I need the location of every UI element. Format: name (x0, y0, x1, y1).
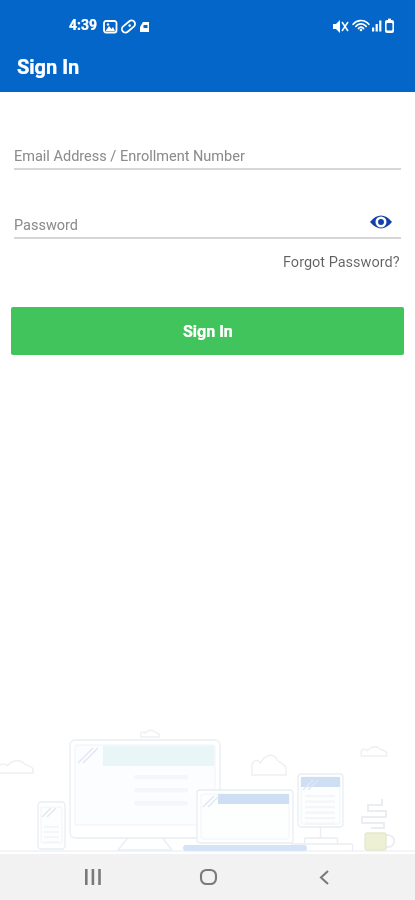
button[interactable]: Back (301, 854, 348, 900)
button[interactable]: Recents (69, 854, 116, 900)
staticText: Sign In (183, 322, 233, 341)
button[interactable]: Home (185, 854, 232, 900)
staticText: Email Address / Enrollment Number (14, 148, 245, 165)
button[interactable]: Show password (367, 208, 395, 236)
staticText: Password (14, 217, 79, 234)
button[interactable]: Forgot Password? (281, 250, 402, 275)
staticText: 4:39 (69, 17, 98, 33)
button[interactable]: Sign In (11, 307, 404, 355)
staticText: Forgot Password? (283, 254, 400, 271)
staticText: Sign In (17, 55, 80, 78)
